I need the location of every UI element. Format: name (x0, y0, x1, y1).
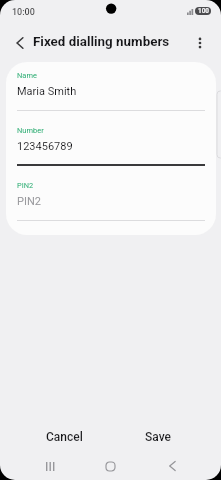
staticText: 123456789 (17, 140, 73, 153)
staticText: Save (145, 430, 171, 444)
staticText: Cancel (46, 430, 83, 444)
staticText: Maria Smith (17, 85, 77, 98)
staticText: 10:00 (12, 7, 35, 18)
button[interactable]: Navigate up (6, 29, 34, 57)
button[interactable]: Save (111, 422, 205, 452)
button[interactable]: Home (80, 452, 141, 480)
button[interactable]: Name (17, 71, 205, 111)
staticText: PIN2 (17, 195, 41, 208)
button[interactable]: More options (186, 29, 214, 57)
staticText: Number (17, 126, 44, 135)
button[interactable]: PIN2 (17, 181, 205, 221)
button[interactable]: Number (17, 126, 205, 166)
staticText: 100 (198, 7, 209, 15)
button[interactable]: Cancel (18, 422, 111, 452)
button[interactable]: Recent apps (19, 452, 80, 480)
staticText: Name (17, 71, 37, 80)
button[interactable]: Back (141, 452, 202, 480)
staticText: PIN2 (17, 181, 34, 190)
staticText: Fixed dialling numbers (33, 34, 170, 50)
